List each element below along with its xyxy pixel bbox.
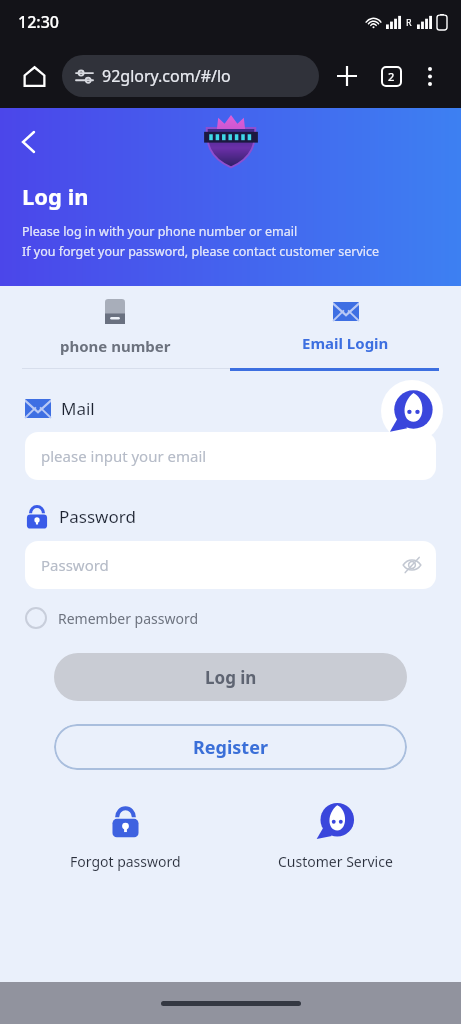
button[interactable]: Register xyxy=(54,724,407,770)
button[interactable]: Remember password xyxy=(25,605,209,631)
button[interactable]: Password xyxy=(25,541,436,589)
button[interactable]: More options xyxy=(413,59,447,93)
button[interactable]: New tab xyxy=(327,56,367,96)
staticText: Please log in with your phone number or … xyxy=(22,223,298,240)
staticText: Forgot password xyxy=(70,852,181,871)
button[interactable]: Log in xyxy=(54,653,407,701)
staticText: R xyxy=(406,16,412,28)
button[interactable]: please input your email xyxy=(25,432,436,480)
staticText: Remember password xyxy=(58,609,199,628)
staticText: 2 xyxy=(388,69,395,84)
button[interactable]: 92glory.com/#/lo xyxy=(62,55,319,97)
staticText: Log in xyxy=(22,181,89,211)
staticText: Log in xyxy=(205,666,257,689)
staticText: Customer Service xyxy=(278,852,393,871)
staticText: Password xyxy=(59,505,136,528)
button[interactable]: Home xyxy=(14,56,54,96)
staticText: 12:30 xyxy=(18,11,59,33)
staticText: please input your email xyxy=(41,446,422,466)
button[interactable]: Customer service chat xyxy=(381,380,443,442)
staticText: Password xyxy=(41,555,402,575)
staticText: Email Login xyxy=(302,333,389,353)
staticText: Mail xyxy=(61,397,95,420)
staticText: 92glory.com/#/lo xyxy=(102,65,231,87)
button[interactable]: Customer Service xyxy=(230,796,441,875)
button[interactable]: phone number xyxy=(0,286,230,368)
button[interactable]: Email Login xyxy=(230,286,461,368)
staticText: phone number xyxy=(60,336,171,356)
button[interactable]: Back xyxy=(8,122,48,162)
staticText: Register xyxy=(193,735,268,760)
staticText: If you forget your password, please cont… xyxy=(22,243,380,260)
button[interactable]: Forgot password xyxy=(20,796,230,875)
button[interactable]: Tabs: 2 xyxy=(371,56,411,96)
